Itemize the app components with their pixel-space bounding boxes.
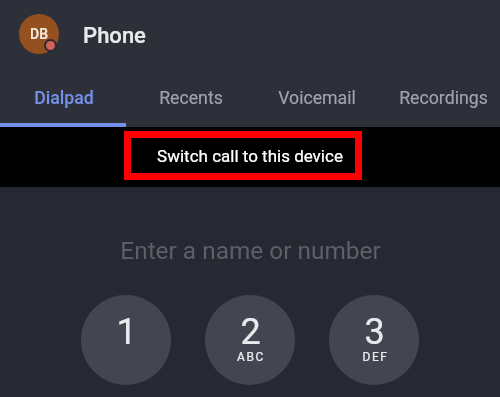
button[interactable]: Recordings xyxy=(380,72,500,125)
button[interactable]: Dialpad xyxy=(0,72,127,125)
button[interactable]: Voicemail xyxy=(253,72,380,125)
button[interactable]: Switch call to this device xyxy=(0,127,500,187)
staticText: Recordings xyxy=(399,88,488,109)
staticText: 3 xyxy=(364,311,385,353)
button[interactable]: Recents xyxy=(127,72,254,125)
staticText: DB xyxy=(30,26,48,42)
button[interactable]: 2 xyxy=(205,295,295,385)
staticText: Recents xyxy=(159,88,223,109)
staticText: Dialpad xyxy=(34,88,94,109)
staticText: DEF xyxy=(362,350,389,364)
staticText: 2 xyxy=(240,311,261,353)
staticText: Switch call to this device xyxy=(157,146,343,166)
button[interactable]: 1 xyxy=(81,295,171,385)
staticText: 1 xyxy=(116,311,137,353)
staticText: Enter a name or number xyxy=(120,236,381,265)
staticText: Voicemail xyxy=(278,88,356,109)
staticText: Phone xyxy=(83,23,146,49)
button[interactable]: Account xyxy=(17,12,62,57)
button[interactable]: 3 xyxy=(329,295,419,385)
staticText: ABC xyxy=(237,350,265,364)
